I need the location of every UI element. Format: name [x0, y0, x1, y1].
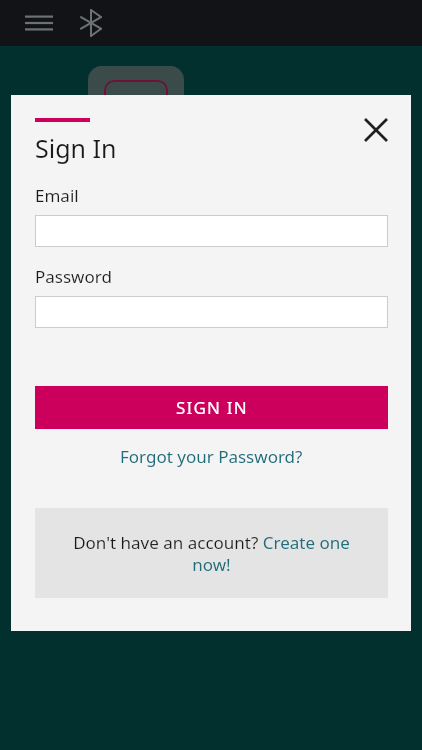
button[interactable]: Close	[353, 107, 399, 153]
staticText: SIGN IN	[176, 396, 248, 419]
staticText: Forgot your Password?	[120, 445, 303, 468]
button[interactable]	[35, 215, 388, 247]
staticText: Email	[35, 184, 79, 207]
staticText: Password	[35, 265, 112, 288]
button[interactable]: Forgot your Password?	[11, 441, 411, 471]
staticText: Don't have an account? Create one now!	[61, 531, 362, 576]
button[interactable]: Don't have an account? Create one now!	[35, 508, 388, 598]
button[interactable]	[35, 296, 388, 328]
button[interactable]: Bluetooth	[68, 0, 114, 46]
button[interactable]: SIGN IN	[35, 386, 388, 429]
staticText: Sign In	[35, 131, 117, 165]
button[interactable]: Menu	[14, 0, 64, 46]
